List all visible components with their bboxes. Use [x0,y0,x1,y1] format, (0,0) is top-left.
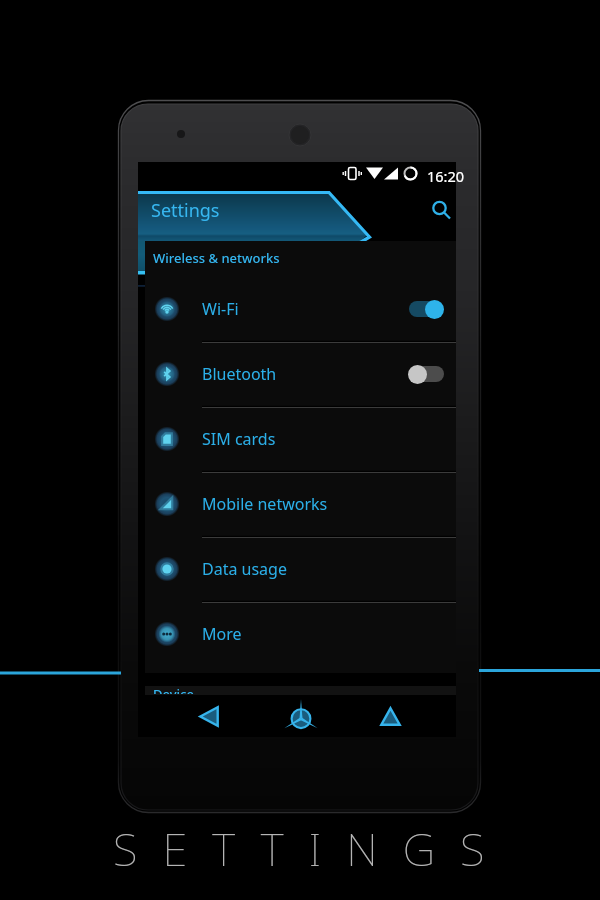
button[interactable]: More [145,601,456,666]
button[interactable]: Data usage [145,536,456,601]
staticText: Wi-Fi [202,298,239,320]
staticText: Data usage [202,558,287,580]
staticText: Mobile networks [202,493,328,515]
staticText: SIM cards [202,428,276,450]
staticText: More [202,623,242,645]
staticText: Device [153,685,194,694]
staticText: Settings [151,198,220,223]
staticText: 16:20 [427,166,465,186]
button[interactable] [408,363,444,385]
staticText: Bluetooth [202,363,277,385]
button[interactable]: Wi-Fi [145,276,456,341]
button[interactable]: Bluetooth [145,341,456,406]
button[interactable]: Recents [366,698,414,734]
button[interactable]: SIM cards [145,406,456,471]
staticText: Wireless & networks [153,249,280,267]
button[interactable] [408,298,444,320]
button[interactable]: Home [277,696,325,736]
staticText: SETTINGS [113,818,510,879]
button[interactable]: Mobile networks [145,471,456,536]
button[interactable]: Search [423,192,463,232]
button[interactable]: Back [185,698,233,734]
